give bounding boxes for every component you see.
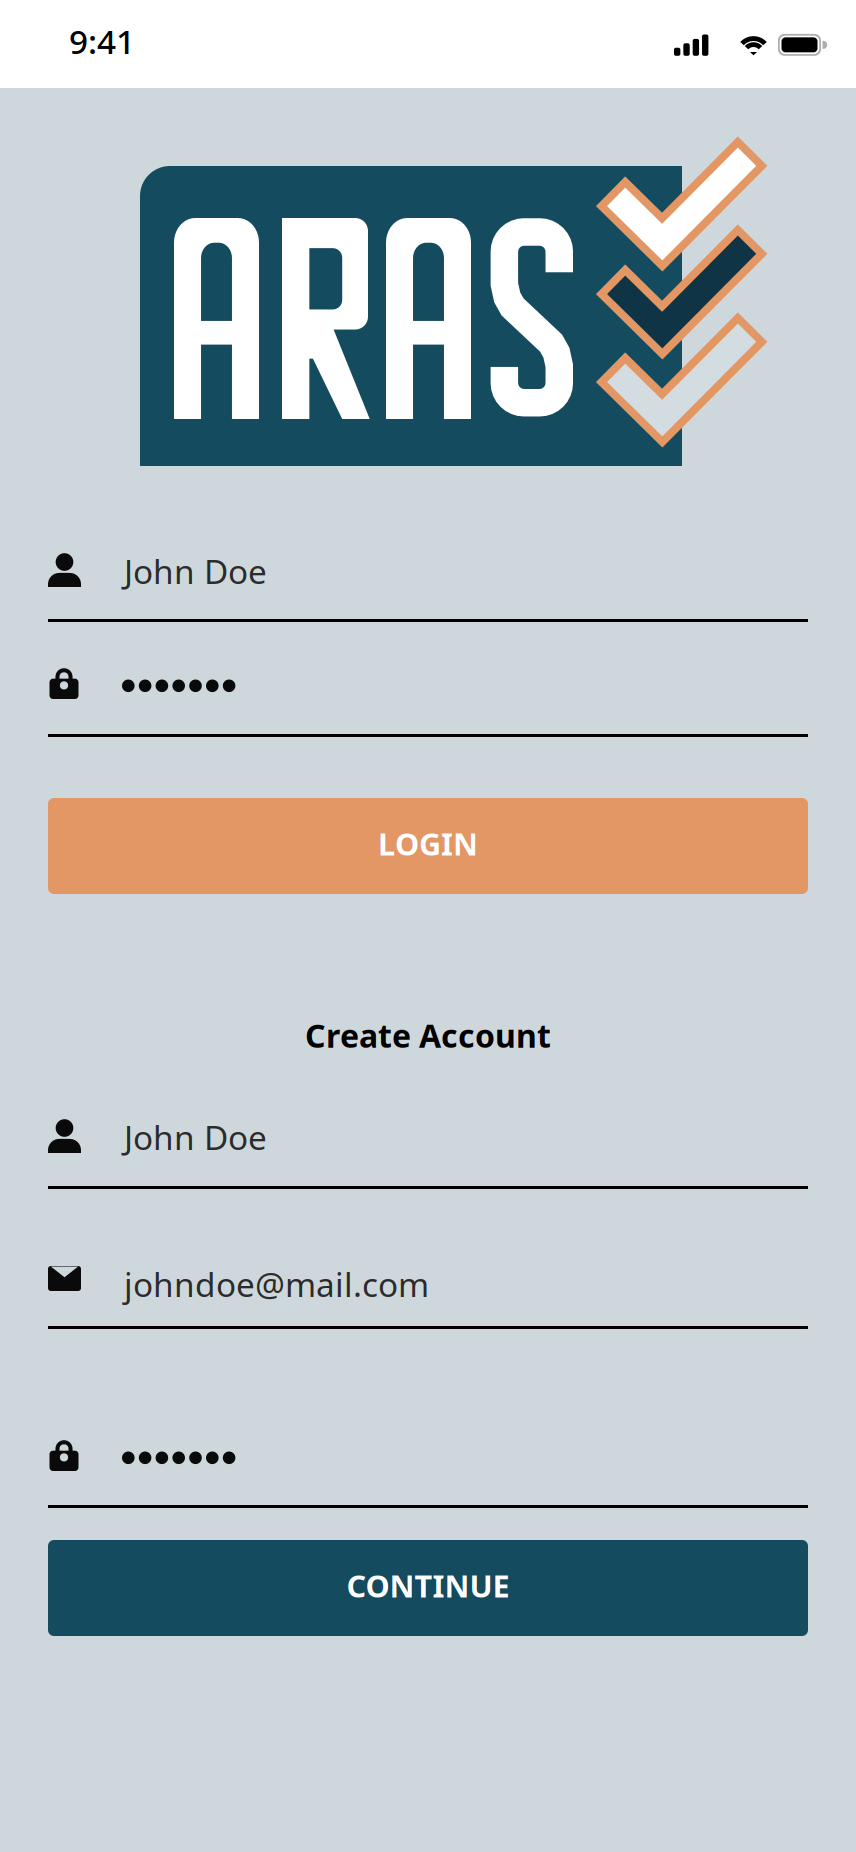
staticText: johndoe@mail.com [124,1262,429,1306]
staticText: 9:41 [69,19,135,63]
button[interactable]: CONTINUE [48,1540,808,1636]
button[interactable]: Username [48,553,808,622]
staticText: CONTINUE [346,1565,509,1606]
button[interactable]: New password [48,1439,808,1508]
button[interactable]: Password [48,667,808,737]
staticText: John Doe [124,1115,267,1159]
button[interactable]: LOGIN [48,798,808,894]
button[interactable]: Email address [48,1266,808,1329]
button[interactable]: Full name [48,1119,808,1189]
staticText: LOGIN [378,823,478,864]
staticText: John Doe [124,549,267,593]
staticText: Create Account [305,1014,551,1056]
